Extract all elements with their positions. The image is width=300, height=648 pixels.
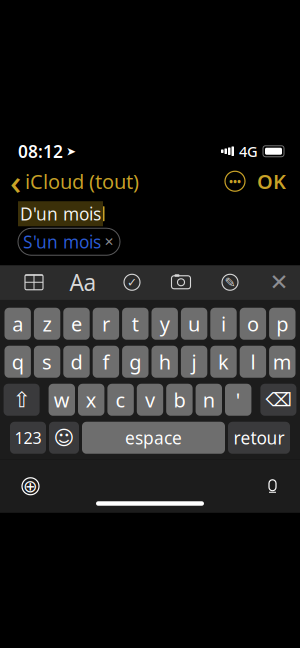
staticText: ✓ (127, 275, 137, 289)
staticText: 4G (239, 141, 258, 161)
button[interactable]: Text format (68, 269, 98, 295)
staticText: ••• (229, 174, 241, 188)
staticText: j (192, 348, 197, 375)
button[interactable]: c (107, 384, 134, 416)
staticText: 08:12 (18, 140, 63, 163)
staticText: v (145, 386, 155, 413)
button[interactable]: Shift (4, 384, 40, 416)
staticText: iCloud (tout) (25, 168, 139, 195)
staticText: c (116, 386, 126, 413)
button[interactable]: Delete (260, 384, 296, 416)
button[interactable]: u (181, 308, 207, 340)
staticText: w (54, 386, 70, 413)
button[interactable]: v (137, 384, 163, 416)
button[interactable]: j (181, 346, 207, 378)
staticText: S'un mois (23, 230, 101, 253)
button[interactable]: s (34, 346, 60, 378)
button[interactable]: Emoji (49, 422, 79, 454)
staticText: ☺ (53, 426, 74, 449)
button[interactable]: i (210, 308, 237, 340)
button[interactable]: h (151, 346, 178, 378)
button[interactable]: t (122, 308, 148, 340)
staticText: ➤ (66, 144, 76, 158)
staticText: o (247, 310, 259, 337)
staticText: s (42, 348, 52, 375)
button[interactable]: Camera (166, 269, 196, 295)
staticText: b (173, 386, 185, 413)
staticText: Aa (69, 267, 96, 297)
staticText: m (273, 348, 292, 375)
button[interactable]: f (93, 346, 119, 378)
button[interactable]: n (196, 384, 222, 416)
button[interactable]: Checklist (117, 269, 147, 295)
staticText: r (102, 310, 110, 337)
staticText: x (86, 386, 97, 413)
button[interactable]: espace (82, 422, 225, 454)
button[interactable]: e (63, 308, 90, 340)
staticText: a (12, 310, 23, 337)
button[interactable]: x (78, 384, 104, 416)
staticText: l (250, 348, 255, 375)
button[interactable]: w (49, 384, 75, 416)
staticText: ⇧ (13, 388, 31, 412)
staticText: ✎ (224, 275, 235, 290)
staticText: q (12, 348, 24, 375)
staticText: ✕ (104, 235, 114, 248)
button[interactable]: y (151, 308, 178, 340)
button[interactable]: o (240, 308, 266, 340)
staticText: f (102, 348, 109, 375)
button[interactable]: More options (219, 165, 251, 197)
button[interactable]: a (4, 308, 31, 340)
staticText: ‹ (10, 158, 21, 204)
staticText: espace (125, 426, 182, 449)
staticText: u (188, 310, 200, 337)
button[interactable]: g (122, 346, 148, 378)
button[interactable]: ‹ (0, 152, 139, 210)
staticText: k (218, 348, 229, 375)
staticText: i (221, 310, 226, 337)
button[interactable]: q (4, 346, 31, 378)
staticText: g (129, 348, 141, 375)
button[interactable]: Markup (215, 269, 245, 295)
button[interactable]: p (269, 308, 295, 340)
staticText: D'un mois (20, 202, 101, 225)
button[interactable]: 123 (10, 422, 46, 454)
button[interactable]: l (240, 346, 266, 378)
staticText: ⊕ (23, 476, 38, 496)
staticText: OK (257, 168, 286, 195)
staticText: 123 (14, 427, 41, 448)
button[interactable]: Dictate (269, 472, 300, 501)
staticText: p (276, 310, 288, 337)
button[interactable]: Change keyboard language (0, 468, 39, 504)
staticText: h (159, 348, 171, 375)
staticText: ' (236, 386, 241, 413)
button[interactable]: m (269, 346, 295, 378)
button[interactable]: Close toolbar (264, 269, 294, 295)
button[interactable]: b (166, 384, 193, 416)
button[interactable]: ' (225, 384, 251, 416)
staticText: t (132, 310, 139, 337)
button[interactable]: retour (228, 422, 290, 454)
staticText: d (70, 348, 82, 375)
staticText: ⌫ (265, 389, 291, 410)
staticText: retour (233, 426, 284, 449)
staticText: e (71, 310, 82, 337)
button[interactable]: k (210, 346, 237, 378)
staticText: n (203, 386, 215, 413)
staticText: z (43, 310, 52, 337)
button[interactable]: OK (251, 162, 300, 201)
button[interactable]: z (34, 308, 60, 340)
button[interactable]: r (93, 308, 119, 340)
button[interactable]: Insert table (19, 269, 49, 295)
button[interactable]: d (63, 346, 90, 378)
staticText: y (160, 310, 170, 337)
staticText: ✕ (269, 269, 288, 295)
